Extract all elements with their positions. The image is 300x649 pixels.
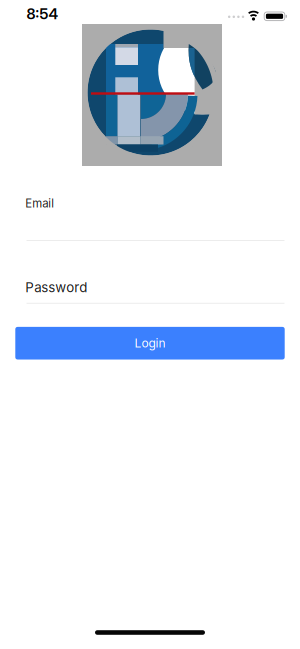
button[interactable]: Email: [25, 196, 283, 241]
button[interactable]: Password: [25, 272, 283, 302]
button[interactable]: Login: [15, 327, 285, 359]
staticText: 8:54: [26, 5, 58, 23]
staticText: Password: [25, 279, 87, 295]
staticText: Login: [134, 336, 165, 350]
staticText: Email: [25, 196, 54, 210]
